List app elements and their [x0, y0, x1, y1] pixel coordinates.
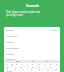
button[interactable]: q — [4, 63, 9, 66]
button[interactable]: m — [52, 68, 60, 70]
staticText: k — [50, 66, 52, 68]
staticText: v — [31, 68, 33, 70]
staticText: CLEAR — [50, 28, 58, 31]
button[interactable]: When? — [4, 38, 60, 44]
staticText: c — [23, 68, 25, 70]
staticText: t — [27, 63, 28, 66]
button[interactable]: ?123 — [4, 70, 14, 72]
button[interactable]: a — [4, 66, 11, 68]
staticText: x — [15, 68, 17, 70]
staticText: e — [16, 63, 18, 66]
staticText: Where to? — [6, 34, 18, 37]
button[interactable]: p — [54, 63, 60, 66]
button[interactable]: c — [20, 68, 28, 70]
staticText: Nearby — [6, 52, 15, 55]
staticText: w — [11, 63, 13, 66]
staticText: Find places and people near you right no… — [6, 10, 41, 16]
button[interactable]: u — [36, 63, 42, 66]
staticText: l — [57, 66, 58, 68]
staticText: m — [55, 68, 58, 70]
staticText: a — [46, 60, 48, 63]
button[interactable]: h — [36, 66, 42, 68]
staticText: h — [38, 66, 40, 68]
button[interactable]: j — [42, 66, 48, 68]
button[interactable]: Where to? — [4, 32, 60, 38]
staticText: r — [21, 63, 22, 66]
button[interactable]: f — [24, 66, 30, 68]
staticText: n — [47, 68, 49, 70]
staticText: f — [27, 66, 28, 68]
staticText: s — [14, 66, 16, 68]
button[interactable]: d — [18, 66, 24, 68]
staticText: p — [56, 63, 58, 66]
staticText: i — [45, 63, 46, 66]
button[interactable]: y — [30, 63, 36, 66]
button[interactable]: z — [4, 68, 12, 70]
staticText: Recent — [6, 28, 14, 31]
button[interactable]: n — [44, 68, 52, 70]
staticText: Popular — [6, 57, 15, 60]
button[interactable]: l — [54, 66, 60, 68]
staticText: the — [16, 60, 20, 63]
staticText: d — [20, 66, 22, 68]
staticText: How many? — [6, 46, 20, 49]
button[interactable]: Search — [26, 3, 39, 8]
staticText: z — [7, 68, 9, 70]
staticText: g — [32, 66, 34, 68]
button[interactable]: How many? — [4, 44, 60, 50]
button[interactable]: v — [28, 68, 36, 70]
button[interactable]: t — [24, 63, 30, 66]
staticText: When? — [6, 40, 14, 43]
staticText: u — [38, 63, 40, 66]
button[interactable]: e — [14, 63, 19, 66]
staticText: q — [6, 63, 8, 66]
staticText: j — [45, 66, 46, 68]
button[interactable]: g — [30, 66, 36, 68]
button[interactable]: s — [11, 66, 18, 68]
button[interactable]: i — [42, 63, 48, 66]
button[interactable]: b — [36, 68, 44, 70]
button[interactable]: k — [48, 66, 54, 68]
staticText: ?123 — [7, 70, 12, 72]
button[interactable]: w — [9, 63, 14, 66]
staticText: to — [32, 60, 35, 63]
staticText: b — [39, 68, 41, 70]
staticText: . — [48, 70, 49, 72]
button[interactable]: r — [19, 63, 24, 66]
staticText: y — [32, 63, 34, 66]
staticText: a — [7, 66, 9, 68]
staticText: o — [50, 63, 52, 66]
button[interactable]: o — [48, 63, 54, 66]
button[interactable]: x — [12, 68, 20, 70]
